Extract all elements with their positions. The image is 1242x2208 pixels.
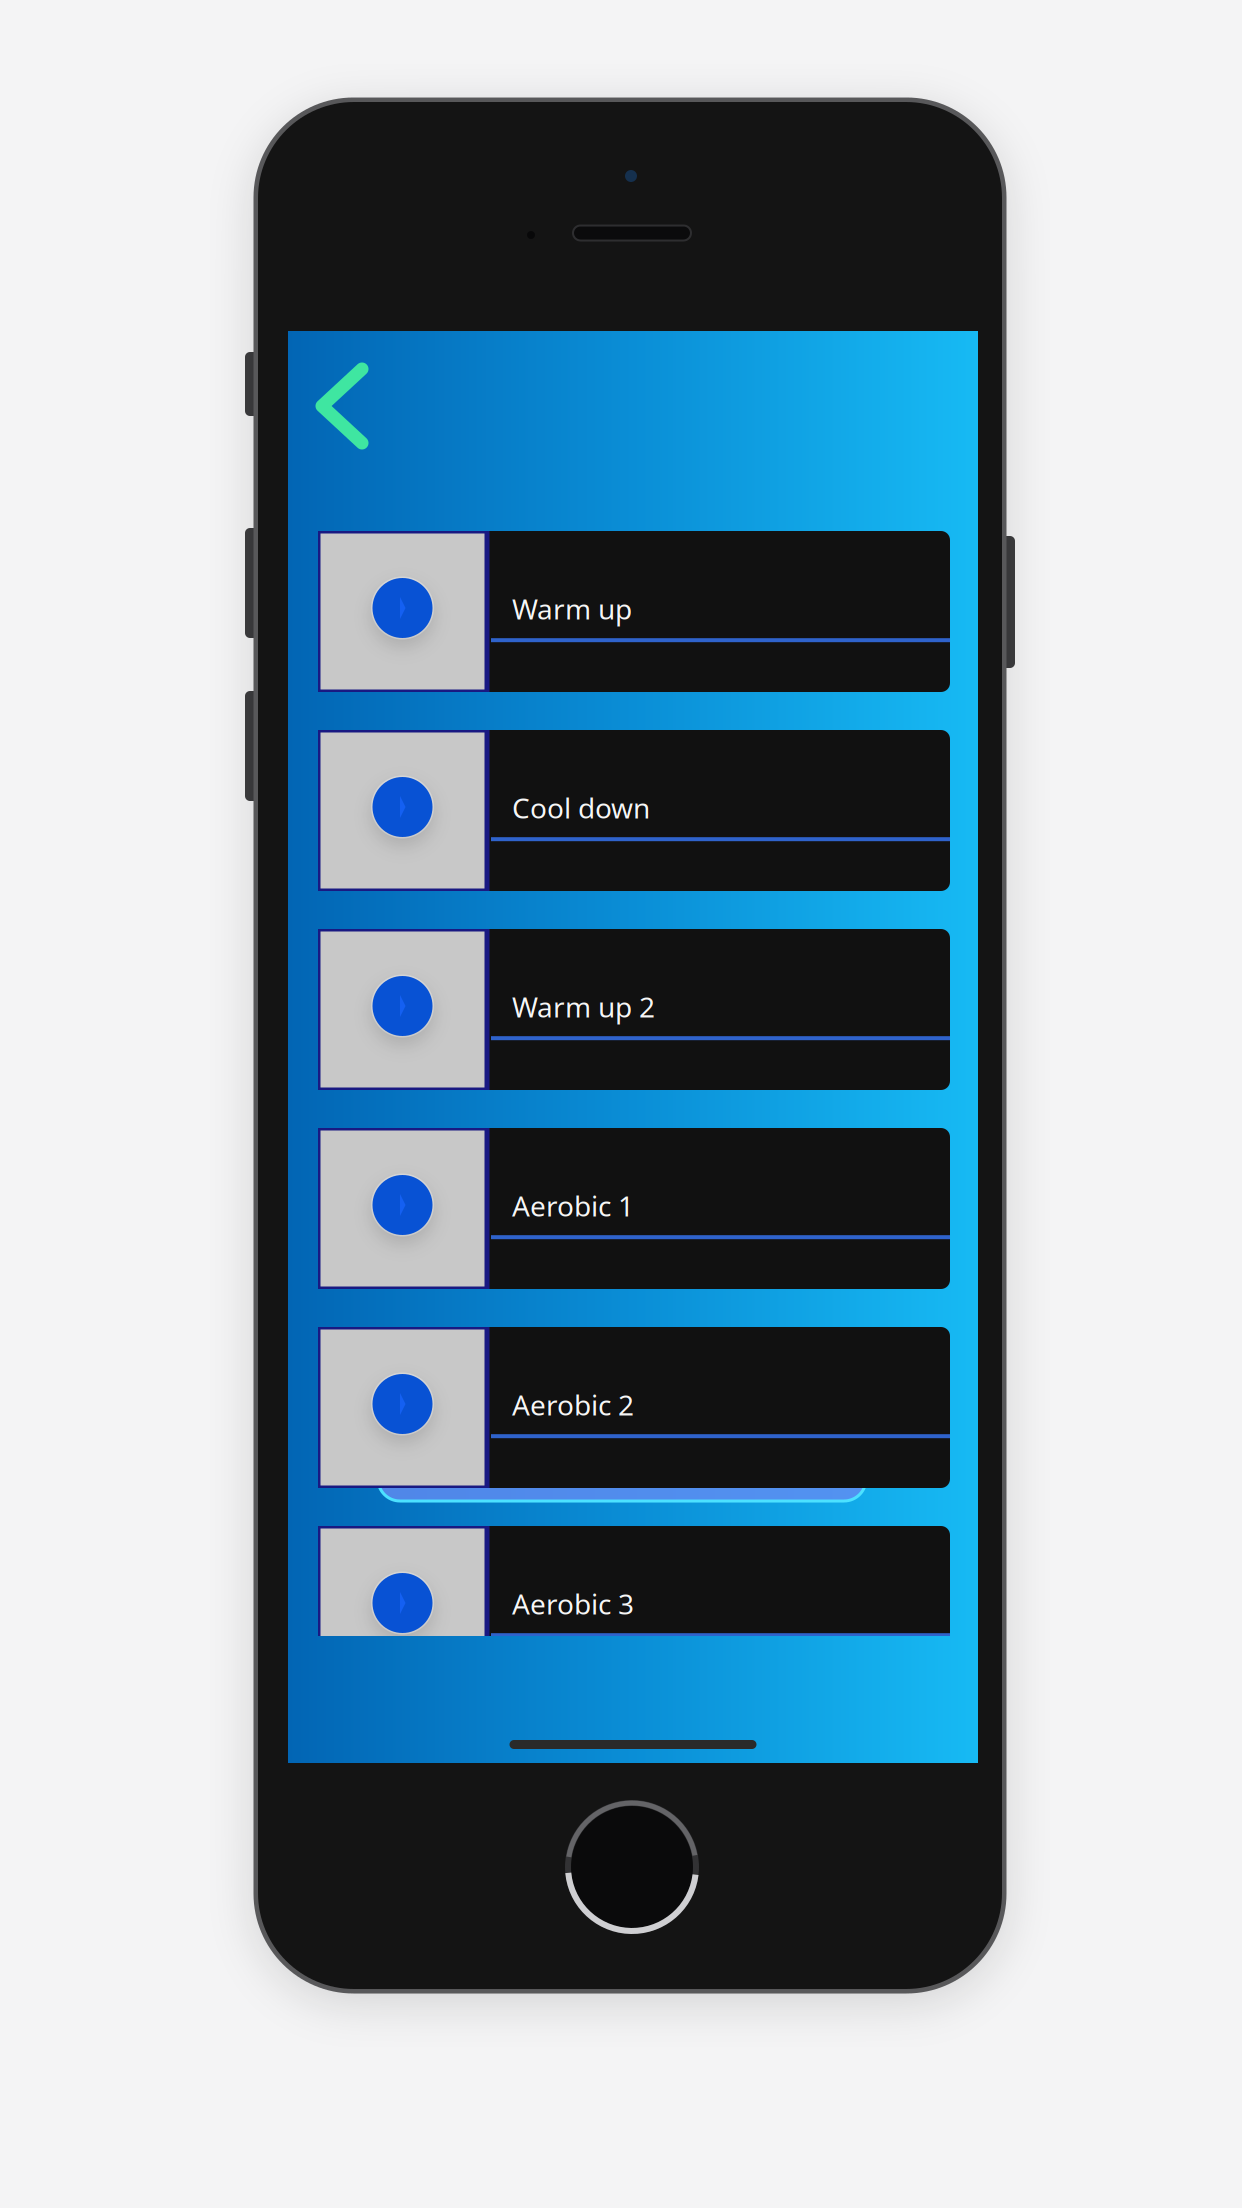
button[interactable]: Aerobic 2: [318, 1327, 950, 1488]
staticText: Warm up: [512, 590, 632, 627]
staticText: Cool down: [512, 789, 650, 826]
staticText: Warm up 2: [512, 988, 655, 1025]
button[interactable]: Cool down: [318, 730, 950, 891]
staticText: Aerobic 3: [512, 1585, 634, 1622]
staticText: Aerobic 2: [512, 1386, 634, 1423]
button[interactable]: Aerobic 3: [318, 1526, 950, 1687]
staticText: Aerobic 1: [512, 1187, 634, 1224]
button[interactable]: Back: [303, 352, 381, 460]
button[interactable]: Aerobic 1: [318, 1128, 950, 1289]
button[interactable]: Warm up 2: [318, 929, 950, 1090]
button[interactable]: Warm up: [318, 531, 950, 692]
